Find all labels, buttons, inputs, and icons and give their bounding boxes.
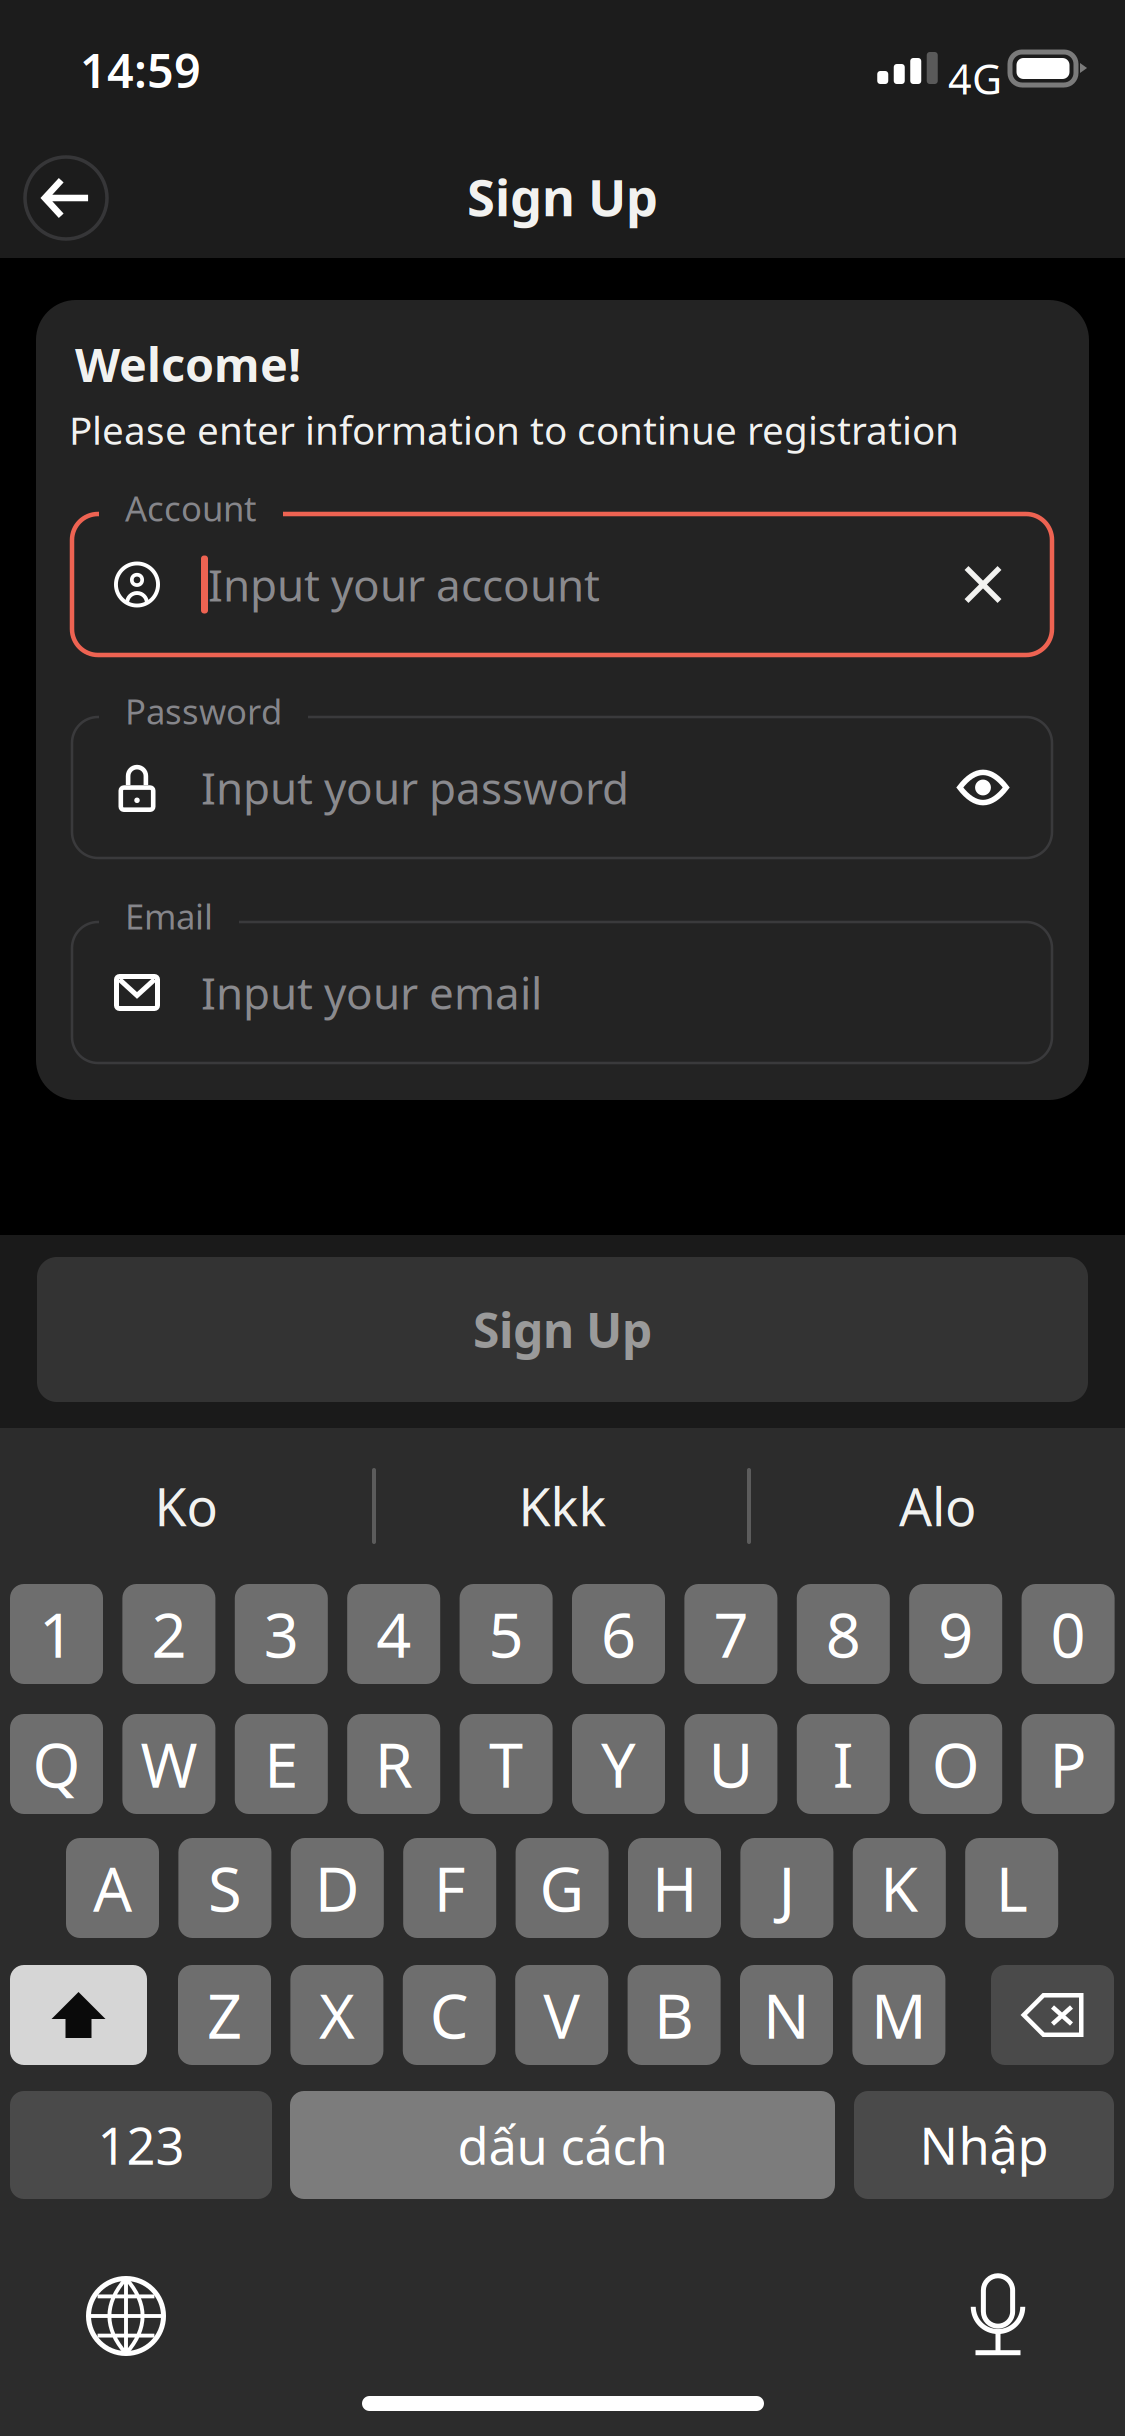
staticText: G: [540, 1847, 585, 1929]
button[interactable]: Nhập: [854, 2091, 1114, 2199]
staticText: 4: [376, 1593, 411, 1675]
button[interactable]: L: [965, 1838, 1058, 1938]
staticText: Input your password: [201, 758, 629, 817]
staticText: W: [140, 1723, 197, 1805]
button[interactable]: H: [628, 1838, 721, 1938]
button[interactable]: B: [628, 1965, 721, 2065]
staticText: M: [871, 1974, 927, 2056]
button[interactable]: 7: [684, 1584, 777, 1684]
staticText: 0: [1051, 1593, 1086, 1675]
button[interactable]: W: [122, 1714, 215, 1814]
staticText: X: [319, 1974, 355, 2056]
button[interactable]: S: [178, 1838, 271, 1938]
button[interactable]: G: [516, 1838, 609, 1938]
staticText: 2: [151, 1593, 186, 1675]
button[interactable]: U: [684, 1714, 777, 1814]
button[interactable]: Y: [572, 1714, 665, 1814]
staticText: Email: [125, 893, 213, 939]
button[interactable]: Q: [10, 1714, 103, 1814]
button[interactable]: R: [347, 1714, 440, 1814]
button[interactable]: O: [909, 1714, 1002, 1814]
button[interactable]: Show password: [954, 758, 1012, 816]
button[interactable]: M: [852, 1965, 945, 2065]
button[interactable]: Next keyboard: [71, 2261, 181, 2371]
staticText: 14:59: [80, 39, 201, 101]
staticText: 8: [826, 1593, 861, 1675]
button[interactable]: V: [515, 1965, 608, 2065]
button[interactable]: 0: [1022, 1584, 1115, 1684]
staticText: 1: [39, 1593, 74, 1675]
staticText: C: [430, 1974, 469, 2056]
button[interactable]: 123: [10, 2091, 272, 2199]
staticText: Input your email: [201, 963, 542, 1022]
button[interactable]: T: [460, 1714, 553, 1814]
button[interactable]: Clear account: [954, 555, 1012, 613]
staticText: R: [375, 1723, 413, 1805]
button[interactable]: 5: [460, 1584, 553, 1684]
staticText: Nhập: [919, 2111, 1048, 2179]
staticText: Account: [125, 485, 257, 531]
button[interactable]: F: [403, 1838, 496, 1938]
staticText: 4G: [948, 51, 1002, 106]
button[interactable]: N: [740, 1965, 833, 2065]
staticText: 7: [713, 1593, 748, 1675]
staticText: Y: [601, 1723, 636, 1805]
staticText: N: [763, 1974, 810, 2056]
staticText: Alo: [899, 1471, 976, 1541]
button[interactable]: A: [66, 1838, 159, 1938]
staticText: 5: [489, 1593, 524, 1675]
staticText: T: [489, 1723, 523, 1805]
staticText: dấu cách: [457, 2111, 667, 2179]
staticText: S: [208, 1847, 242, 1929]
button[interactable]: Shift: [10, 1965, 147, 2065]
staticText: Input your account: [208, 555, 600, 614]
button[interactable]: 9: [909, 1584, 1002, 1684]
staticText: 123: [97, 2111, 184, 2179]
staticText: Ko: [154, 1471, 217, 1541]
staticText: P: [1050, 1723, 1087, 1805]
staticText: Password: [125, 688, 282, 734]
button[interactable]: Delete: [991, 1965, 1114, 2065]
staticText: B: [654, 1974, 694, 2056]
button[interactable]: Kkk: [375, 1450, 750, 1562]
button[interactable]: Alo: [750, 1450, 1125, 1562]
staticText: I: [833, 1723, 854, 1805]
button[interactable]: P: [1022, 1714, 1115, 1814]
button[interactable]: D: [291, 1838, 384, 1938]
staticText: H: [652, 1847, 697, 1929]
staticText: L: [996, 1847, 1028, 1929]
button[interactable]: K: [853, 1838, 946, 1938]
button[interactable]: 1: [10, 1584, 103, 1684]
staticText: J: [778, 1847, 795, 1929]
button[interactable]: Back: [20, 152, 112, 244]
staticText: Please enter information to continue reg…: [69, 404, 959, 455]
staticText: Sign Up: [467, 163, 658, 230]
staticText: O: [932, 1723, 980, 1805]
staticText: Kkk: [518, 1471, 606, 1541]
staticText: Z: [207, 1974, 242, 2056]
staticText: F: [434, 1847, 466, 1929]
button[interactable]: 2: [122, 1584, 215, 1684]
button[interactable]: 8: [797, 1584, 890, 1684]
button[interactable]: E: [235, 1714, 328, 1814]
button[interactable]: dấu cách: [290, 2091, 835, 2199]
staticText: 3: [264, 1593, 299, 1675]
button[interactable]: Sign Up: [37, 1257, 1088, 1402]
button[interactable]: 4: [347, 1584, 440, 1684]
staticText: Sign Up: [473, 1298, 652, 1361]
button[interactable]: J: [740, 1838, 833, 1938]
staticText: A: [93, 1847, 132, 1929]
button[interactable]: Dictation: [943, 2259, 1053, 2369]
button[interactable]: Z: [178, 1965, 271, 2065]
staticText: Q: [32, 1723, 80, 1805]
staticText: K: [880, 1847, 918, 1929]
staticText: D: [315, 1847, 360, 1929]
button[interactable]: I: [797, 1714, 890, 1814]
staticText: Welcome!: [75, 333, 301, 395]
button[interactable]: Ko: [0, 1450, 372, 1562]
button[interactable]: X: [290, 1965, 383, 2065]
button[interactable]: 6: [572, 1584, 665, 1684]
button[interactable]: 3: [235, 1584, 328, 1684]
staticText: 9: [938, 1593, 973, 1675]
button[interactable]: C: [403, 1965, 496, 2065]
